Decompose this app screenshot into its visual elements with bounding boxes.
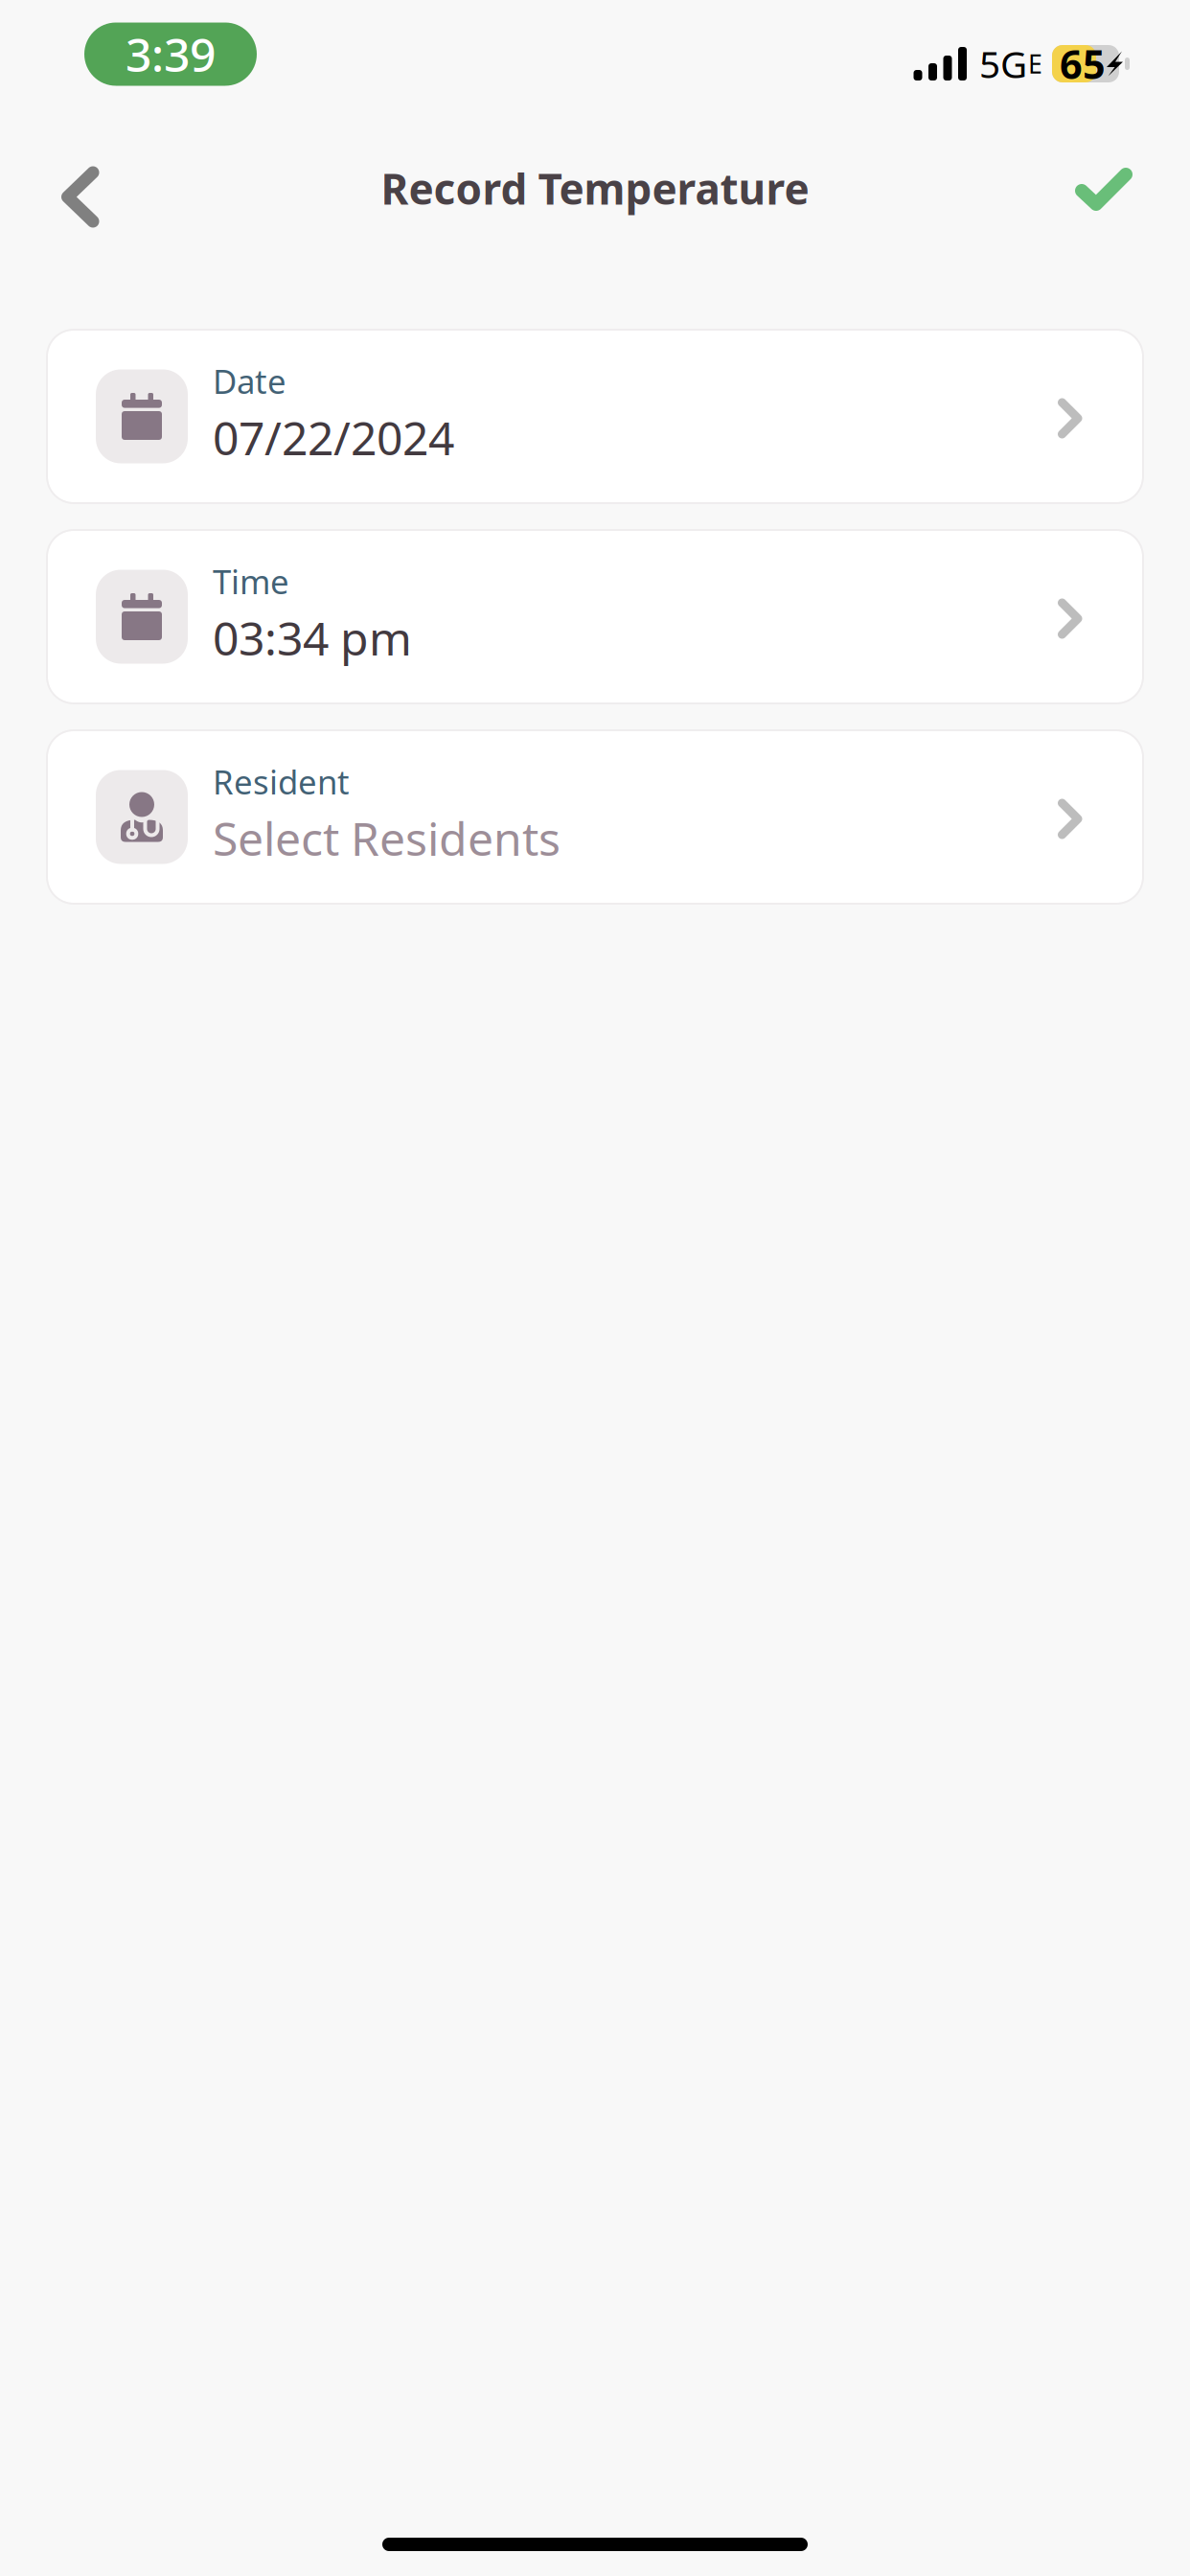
staticText: Date — [213, 359, 286, 403]
staticText: Resident — [213, 759, 350, 804]
staticText: 07/22/2024 — [213, 407, 454, 468]
staticText: E — [1028, 47, 1042, 81]
staticText: Time — [213, 559, 289, 603]
staticText: 65 — [1060, 37, 1106, 90]
staticText: 5G — [979, 39, 1027, 88]
button[interactable]: Date — [47, 330, 1143, 503]
staticText: 3:39 — [126, 24, 216, 85]
staticText: Select Residents — [213, 807, 561, 868]
staticText: 03:34 pm — [213, 607, 412, 668]
button[interactable]: Time — [47, 530, 1143, 703]
button[interactable]: Resident — [47, 730, 1143, 904]
button[interactable]: Back — [0, 146, 128, 238]
staticText: Record Temperature — [381, 160, 809, 216]
button[interactable]: Save — [1046, 147, 1190, 238]
